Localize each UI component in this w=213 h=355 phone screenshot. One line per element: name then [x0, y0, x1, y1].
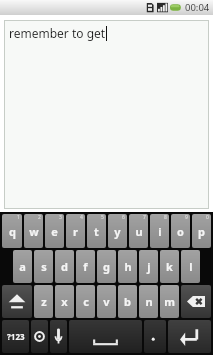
staticText: d: [61, 259, 68, 274]
staticText: 9: [185, 214, 188, 221]
button[interactable]: m: [160, 285, 179, 318]
staticText: remember to get: [9, 25, 106, 41]
staticText: u: [135, 224, 143, 239]
staticText: 0: [206, 214, 209, 221]
button[interactable]: n: [139, 285, 158, 318]
button[interactable]: remember to get: [4, 20, 209, 209]
button[interactable]: Voice input: [50, 320, 67, 353]
staticText: 5: [101, 214, 104, 221]
button[interactable]: u: [129, 214, 148, 248]
staticText: i: [158, 224, 162, 239]
button[interactable]: i: [150, 214, 169, 248]
staticText: 1: [17, 214, 20, 221]
button[interactable]: j: [139, 250, 158, 283]
button[interactable]: y: [108, 214, 127, 248]
button[interactable]: w: [24, 214, 43, 248]
button[interactable]: Space: [69, 320, 142, 353]
staticText: g: [103, 259, 110, 274]
staticText: j: [147, 259, 151, 274]
button[interactable]: c: [76, 285, 95, 318]
button[interactable]: r: [66, 214, 85, 248]
staticText: z: [41, 294, 47, 309]
staticText: c: [83, 294, 89, 309]
button[interactable]: g: [97, 250, 116, 283]
button[interactable]: s: [34, 250, 53, 283]
staticText: r: [73, 224, 78, 239]
button[interactable]: z: [34, 285, 53, 318]
staticText: 00:04: [185, 1, 210, 14]
button[interactable]: a: [13, 250, 32, 283]
button[interactable]: Period: [144, 320, 166, 353]
staticText: o: [177, 224, 184, 239]
staticText: m: [164, 294, 175, 309]
button[interactable]: x: [55, 285, 74, 318]
staticText: a: [19, 259, 26, 274]
button[interactable]: o: [171, 214, 190, 248]
staticText: 6: [122, 214, 125, 221]
button[interactable]: f: [76, 250, 95, 283]
button[interactable]: Delete: [181, 285, 211, 318]
staticText: 3: [59, 214, 62, 221]
button[interactable]: k: [160, 250, 179, 283]
staticText: 8: [164, 214, 167, 221]
staticText: t: [94, 224, 99, 239]
button[interactable]: v: [97, 285, 116, 318]
button[interactable]: t: [87, 214, 106, 248]
staticText: l: [189, 259, 193, 274]
button[interactable]: Input method settings: [31, 320, 48, 353]
button[interactable]: Shift: [2, 285, 32, 318]
staticText: w: [29, 224, 39, 239]
button[interactable]: p: [192, 214, 211, 248]
staticText: b: [124, 294, 131, 309]
button[interactable]: b: [118, 285, 137, 318]
staticText: s: [41, 259, 47, 274]
staticText: p: [198, 224, 205, 239]
staticText: e: [51, 224, 58, 239]
staticText: 2: [38, 214, 41, 221]
staticText: f: [83, 259, 88, 274]
staticText: v: [103, 294, 110, 309]
staticText: k: [166, 259, 173, 274]
button[interactable]: l: [181, 250, 200, 283]
staticText: ?123: [7, 331, 25, 342]
staticText: q: [9, 224, 16, 239]
staticText: 4: [80, 214, 83, 221]
staticText: 7: [143, 214, 146, 221]
staticText: n: [145, 294, 153, 309]
staticText: h: [124, 259, 132, 274]
button[interactable]: Enter: [168, 320, 211, 353]
button[interactable]: h: [118, 250, 137, 283]
button[interactable]: d: [55, 250, 74, 283]
button[interactable]: e: [45, 214, 64, 248]
button[interactable]: ?123: [2, 320, 29, 353]
button[interactable]: q: [2, 214, 22, 248]
staticText: y: [114, 224, 121, 239]
staticText: x: [61, 294, 68, 309]
